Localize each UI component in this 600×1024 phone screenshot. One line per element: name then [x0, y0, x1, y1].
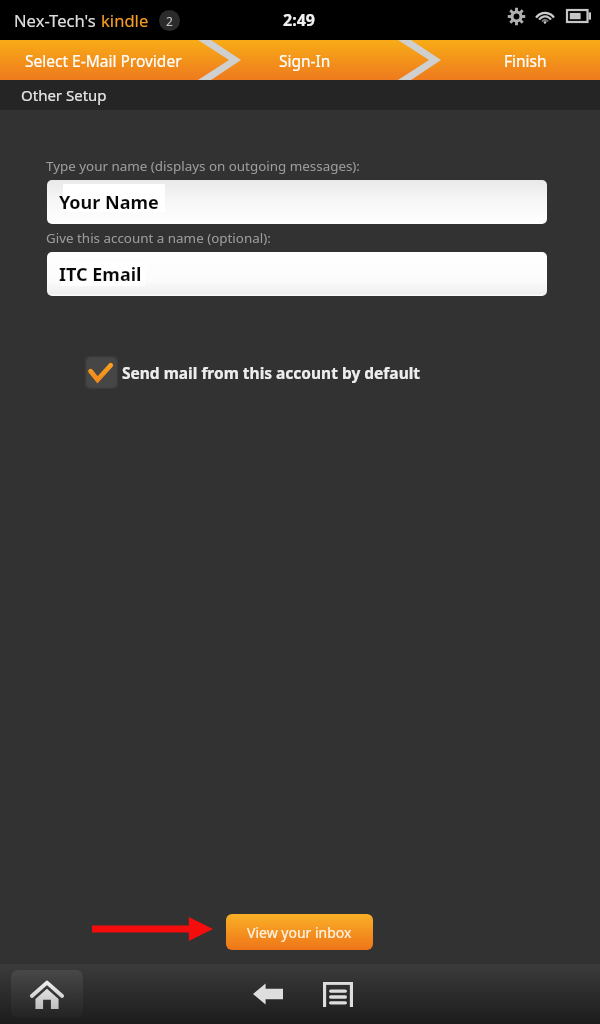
- staticText: kindle: [101, 9, 149, 32]
- button[interactable]: Send mail from this account by default: [85, 356, 421, 389]
- staticText: Type your name (displays on outgoing mes…: [46, 157, 360, 175]
- button[interactable]: Sign-In: [279, 50, 331, 71]
- button[interactable]: Select E-Mail Provider: [25, 50, 182, 71]
- staticText: Nex-Tech's: [14, 9, 101, 32]
- button[interactable]: Menu: [315, 971, 361, 1017]
- staticText: View your inbox: [247, 923, 352, 942]
- button[interactable]: Your Name: [47, 180, 547, 224]
- button[interactable]: Finish: [504, 50, 547, 71]
- other: Battery: [566, 9, 591, 23]
- button[interactable]: Home: [11, 970, 83, 1018]
- button[interactable]: ITC Email: [47, 252, 547, 296]
- staticText: 2:49: [283, 9, 315, 31]
- button[interactable]: Back: [245, 971, 291, 1017]
- staticText: Your Name: [59, 190, 159, 215]
- staticText: Other Setup: [21, 85, 107, 105]
- staticText: ITC Email: [59, 262, 142, 287]
- staticText: 2: [166, 13, 173, 29]
- staticText: Send mail from this account by default: [122, 362, 421, 383]
- other: Settings: [508, 8, 525, 25]
- other: Wi-Fi: [534, 7, 556, 24]
- staticText: Give this account a name (optional):: [46, 229, 271, 247]
- button[interactable]: View your inbox: [226, 914, 373, 950]
